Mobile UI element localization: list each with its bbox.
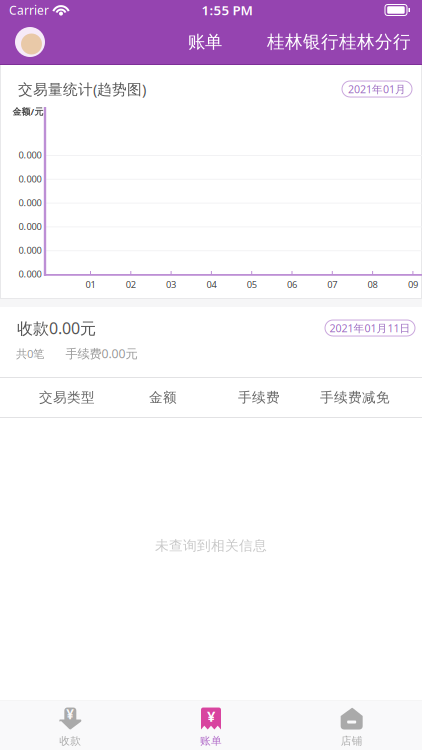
staticText: 共0笔 [16,346,44,361]
staticText: 手续费0.00元 [65,345,137,362]
staticText: 店铺 [341,734,363,748]
staticText: 07 [327,278,337,291]
staticText: 2021年01月11日 [329,321,410,335]
staticText: 交易类型 [39,389,95,406]
button[interactable]: 2021年01月 [342,81,412,97]
staticText: 0.000 [18,268,41,280]
staticText: 1:55 PM [201,1,252,19]
staticText: 收款 [59,734,81,748]
staticText: 手续费 [238,389,280,406]
staticText: 09 [408,278,418,291]
staticText: 03 [166,278,176,291]
staticText: ¥ [66,705,74,723]
staticText: 账单 [188,31,222,53]
staticText: 金额/元 [12,105,43,118]
staticText: 06 [287,278,297,291]
button[interactable]: 2021年01月11日 [325,320,415,336]
staticText: 0.000 [18,244,41,256]
staticText: ¥ [207,706,215,726]
button[interactable]: ¥ [0,700,141,750]
staticText: 0.000 [18,196,41,209]
staticText: 0.000 [18,173,41,185]
staticText: 交易量统计(趋势图) [18,79,146,99]
staticText: 04 [206,278,216,291]
staticText: 桂林银行桂林分行 [267,31,411,53]
staticText: 收款0.00元 [17,317,96,339]
staticText: 08 [368,278,378,291]
staticText: 01 [85,278,95,291]
button[interactable]: Profile [13,25,47,59]
staticText: 0.000 [18,149,41,161]
button[interactable]: 店铺 [281,700,422,750]
staticText: 账单 [200,734,222,748]
button[interactable]: ¥ [141,700,281,750]
staticText: 0.000 [18,220,41,233]
staticText: 05 [247,278,257,291]
staticText: Carrier [9,2,49,18]
staticText: 2021年01月 [348,82,406,96]
staticText: 未查询到相关信息 [155,537,267,554]
staticText: 02 [126,278,136,291]
staticText: 金额 [149,389,177,406]
staticText: 手续费减免 [320,389,390,406]
